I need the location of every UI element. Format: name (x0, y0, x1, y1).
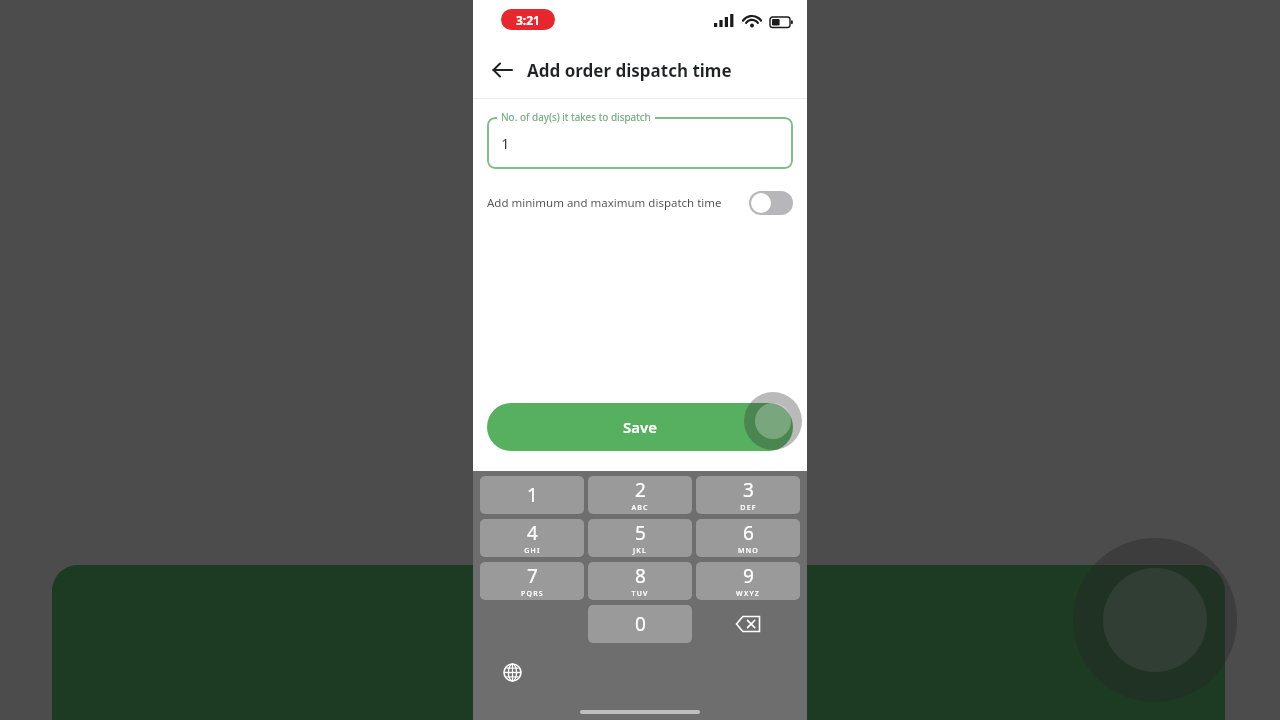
button[interactable]: 8 (588, 562, 692, 600)
staticText: 1 (501, 133, 510, 153)
staticText: 4 (527, 520, 538, 546)
staticText: PQRS (521, 589, 544, 599)
staticText: 9 (743, 563, 754, 589)
button[interactable]: 6 (696, 519, 800, 557)
staticText: 3 (743, 477, 754, 503)
staticText: ABC (631, 503, 649, 513)
staticText: Add order dispatch time (527, 59, 732, 82)
button[interactable]: 1 (480, 476, 584, 514)
button[interactable]: Save (487, 403, 793, 451)
staticText: 3:21 (516, 12, 540, 28)
staticText: Save (623, 417, 658, 437)
staticText: MNO (738, 546, 759, 556)
button[interactable]: Back (485, 53, 519, 87)
button[interactable]: 4 (480, 519, 584, 557)
staticText: 2 (635, 477, 646, 503)
staticText: 1 (527, 482, 538, 508)
staticText: GHI (524, 546, 541, 556)
button[interactable]: 3 (696, 476, 800, 514)
button[interactable]: 5 (588, 519, 692, 557)
staticText: DEF (740, 503, 757, 513)
staticText: 5 (635, 520, 646, 546)
staticText: 0 (635, 611, 646, 637)
button[interactable]: 2 (588, 476, 692, 514)
button[interactable]: Add minimum and maximum dispatch time (487, 191, 793, 215)
staticText: WXYZ (736, 589, 760, 599)
staticText: 8 (635, 563, 646, 589)
button[interactable]: 7 (480, 562, 584, 600)
button[interactable]: 0 (588, 605, 692, 643)
button[interactable]: 1 (487, 117, 793, 169)
staticText: Add minimum and maximum dispatch time (487, 195, 722, 211)
staticText: TUV (631, 589, 649, 599)
button[interactable]: Backspace (696, 605, 800, 643)
button[interactable]: 9 (696, 562, 800, 600)
staticText: No. of day(s) it takes to dispatch (501, 110, 651, 124)
staticText: JKL (633, 546, 647, 556)
staticText: 6 (743, 520, 754, 546)
staticText: 7 (527, 563, 538, 589)
button[interactable]: Change keyboard language (497, 657, 527, 687)
